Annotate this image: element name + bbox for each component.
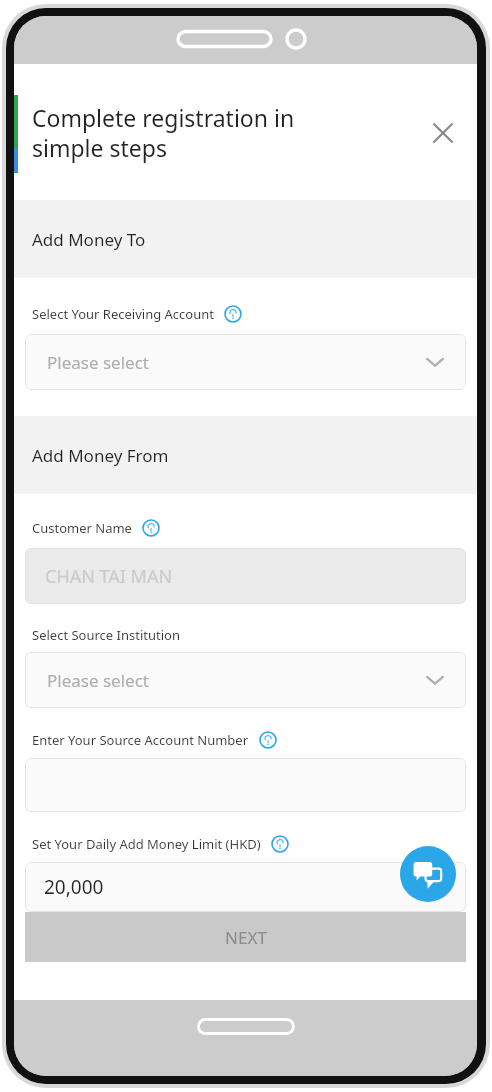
staticText: CHAN TAI MAN [45,564,173,589]
button[interactable]: Help [270,834,290,854]
button[interactable]: Help [223,304,243,324]
staticText: Add Money To [32,228,146,251]
button[interactable]: Please select [25,652,466,708]
staticText: Please select [47,669,149,692]
button[interactable]: Please select [25,334,466,390]
staticText: NEXT [225,926,267,949]
staticText: Select Source Institution [32,626,180,644]
button[interactable] [25,758,466,812]
button[interactable]: Close [419,109,467,157]
staticText: Set Your Daily Add Money Limit (HKD) [32,835,261,853]
staticText: Complete registration in simple steps [32,102,419,163]
staticText: Please select [47,351,149,374]
staticText: 20,000 [44,874,104,900]
button[interactable]: Help [141,518,161,538]
button[interactable]: Chat support [400,846,456,902]
staticText: Customer Name [32,519,132,537]
button[interactable]: NEXT [25,912,466,962]
staticText: Add Money From [32,444,169,467]
button[interactable]: Help [258,730,278,750]
button[interactable]: 20,000 [25,862,466,912]
staticText: Enter Your Source Account Number [32,731,249,749]
staticText: Select Your Receiving Account [32,305,214,323]
